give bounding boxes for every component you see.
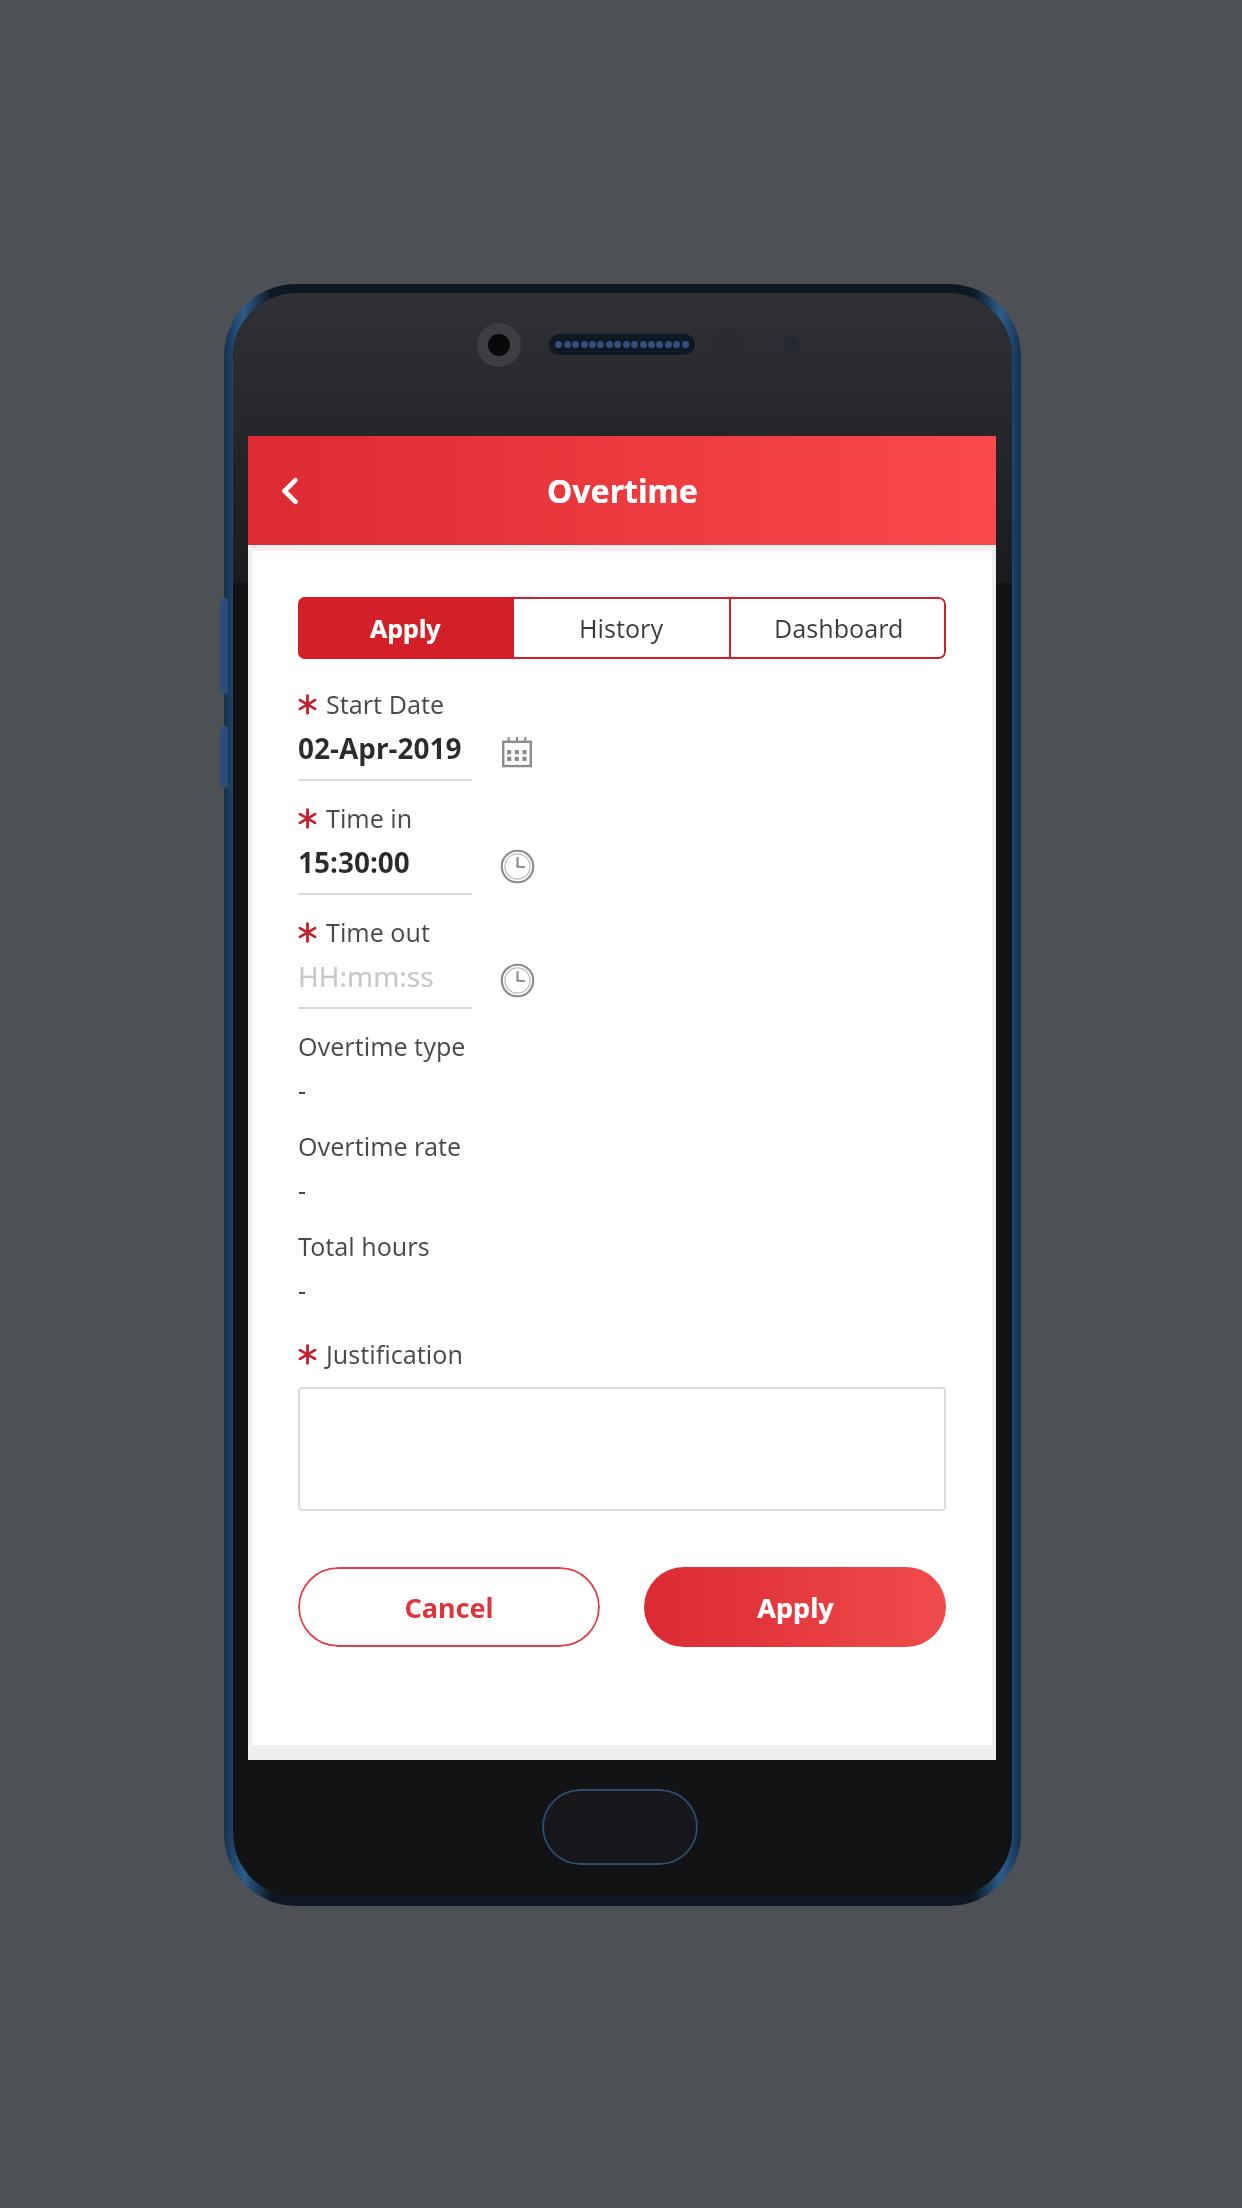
staticText: History [579,611,664,645]
button[interactable]: Pick date [494,729,540,775]
staticText: Apply [370,611,441,645]
button[interactable]: History [514,597,729,659]
staticText: - [298,1273,307,1307]
staticText: Cancel [404,1589,494,1626]
staticText: Time out [326,915,430,949]
button[interactable]: Pick time [494,957,540,1003]
staticText: Time in [326,801,413,835]
button[interactable]: Back [254,454,328,528]
staticText: 15:30:00 [298,843,410,881]
staticText: Dashboard [774,611,904,645]
staticText: Total hours [298,1229,430,1263]
staticText: - [298,1073,307,1107]
staticText: Start Date [326,687,445,721]
staticText: 02-Apr-2019 [298,729,462,767]
staticText: - [298,1173,307,1207]
button[interactable]: Apply [644,1567,946,1647]
staticText: HH:mm:ss [298,957,434,995]
button[interactable]: 15:30:00 [298,843,472,895]
button[interactable]: Pick time [494,843,540,889]
staticText: Overtime type [298,1029,466,1063]
button[interactable] [298,1387,946,1511]
staticText: Apply [757,1589,834,1626]
staticText: Overtime rate [298,1129,462,1163]
staticText: Overtime [547,469,698,513]
button[interactable]: Cancel [298,1567,600,1647]
button[interactable]: Apply [298,597,512,659]
staticText: Justification [326,1337,463,1371]
button[interactable]: Dashboard [731,597,946,659]
button[interactable]: 02-Apr-2019 [298,729,472,781]
button[interactable]: HH:mm:ss [298,957,472,1009]
